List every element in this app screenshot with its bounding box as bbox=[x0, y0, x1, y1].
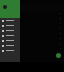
button[interactable]: Add bbox=[56, 53, 61, 58]
